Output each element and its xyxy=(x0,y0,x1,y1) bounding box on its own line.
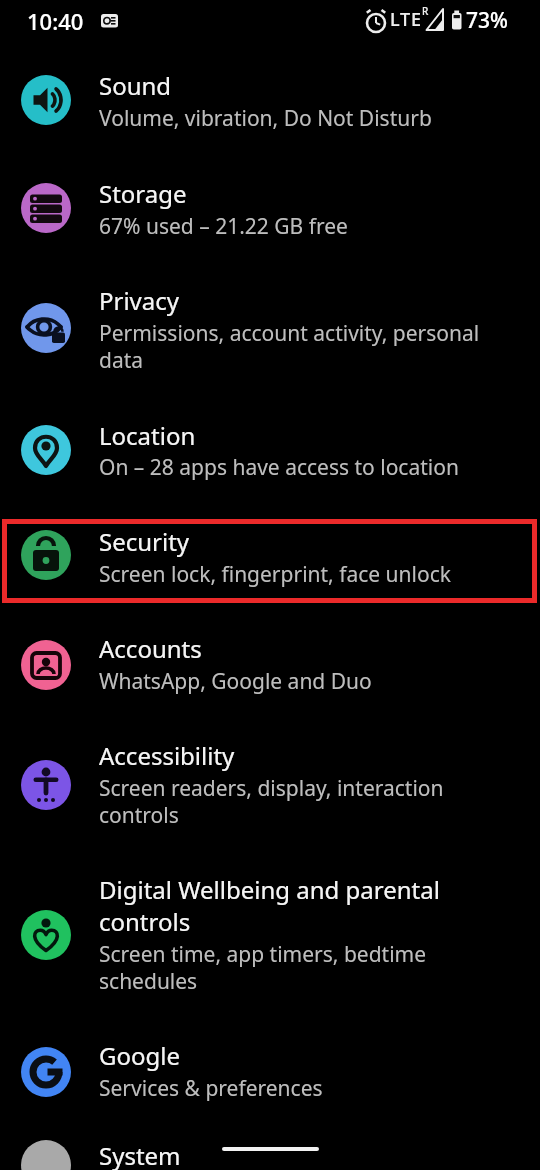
staticText: 73% xyxy=(466,6,508,35)
staticText: data xyxy=(99,346,144,375)
button[interactable] xyxy=(0,393,540,505)
staticText: Storage xyxy=(99,177,187,210)
staticText: Services & preferences xyxy=(99,1074,323,1103)
button[interactable] xyxy=(0,850,540,1015)
staticText: 67% used – 21.22 GB free xyxy=(99,212,348,241)
staticText: Permissions, account activity, personal xyxy=(99,319,480,348)
button[interactable] xyxy=(0,1015,540,1125)
staticText: Privacy xyxy=(99,284,180,317)
staticText: System xyxy=(99,1139,181,1170)
staticText: Screen lock, fingerprint, face unlock xyxy=(99,560,451,589)
button[interactable] xyxy=(0,153,540,262)
staticText: schedules xyxy=(99,967,198,996)
staticText: Screen readers, display, interaction xyxy=(99,774,444,803)
staticText: Screen time, app timers, bedtime xyxy=(99,940,427,969)
staticText: Sound xyxy=(99,69,172,102)
staticText: LTE xyxy=(390,7,422,32)
staticText: On – 28 apps have access to location xyxy=(99,453,459,482)
staticText: Google xyxy=(99,1039,180,1072)
button[interactable] xyxy=(0,48,540,153)
staticText: Location xyxy=(99,419,196,452)
staticText: Digital Wellbeing and parental xyxy=(99,873,440,906)
button[interactable] xyxy=(0,606,540,719)
button[interactable] xyxy=(0,719,540,850)
staticText: Security xyxy=(99,525,190,558)
button[interactable] xyxy=(0,262,540,393)
staticText: Accessibility xyxy=(99,739,235,772)
staticText: 10:40 xyxy=(27,6,84,36)
button[interactable] xyxy=(0,1125,540,1170)
staticText: controls xyxy=(99,801,179,830)
staticText: WhatsApp, Google and Duo xyxy=(99,667,372,696)
staticText: Volume, vibration, Do Not Disturb xyxy=(99,104,432,133)
staticText: R xyxy=(422,4,429,18)
staticText: controls xyxy=(99,905,191,938)
staticText: Accounts xyxy=(99,632,202,665)
button[interactable] xyxy=(0,505,540,606)
